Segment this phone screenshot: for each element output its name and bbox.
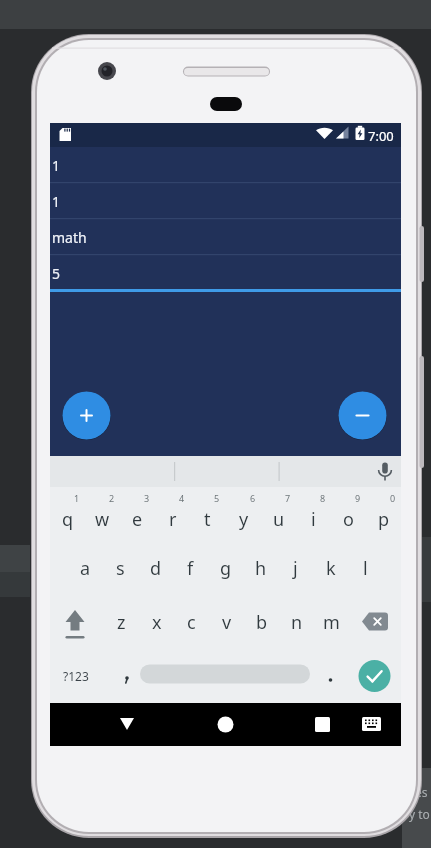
- button[interactable]: [349, 595, 401, 649]
- staticText: 7: [285, 492, 291, 504]
- staticText: 0: [390, 492, 396, 504]
- staticText: k: [326, 556, 336, 581]
- button[interactable]: h: [243, 541, 278, 595]
- staticText: w: [95, 507, 110, 532]
- button[interactable]: 1: [50, 489, 85, 541]
- button[interactable]: [107, 705, 147, 745]
- staticText: b: [256, 610, 268, 635]
- button[interactable]: [137, 649, 310, 703]
- button[interactable]: [338, 391, 387, 440]
- button[interactable]: 1: [50, 147, 401, 183]
- button[interactable]: 4: [155, 489, 190, 541]
- button[interactable]: 0: [366, 489, 401, 541]
- staticText: es: [415, 784, 428, 800]
- button[interactable]: math: [50, 219, 401, 255]
- staticText: u: [273, 507, 285, 532]
- button[interactable]: m: [314, 595, 349, 649]
- staticText: d: [150, 556, 162, 581]
- staticText: 1: [52, 156, 61, 175]
- button[interactable]: 7: [261, 489, 296, 541]
- staticText: 7:00: [368, 127, 394, 145]
- button[interactable]: d: [138, 541, 173, 595]
- staticText: t: [204, 507, 211, 532]
- staticText: j: [293, 556, 298, 581]
- button[interactable]: 6: [226, 489, 261, 541]
- staticText: x: [152, 610, 162, 635]
- button[interactable]: k: [313, 541, 348, 595]
- staticText: i: [311, 507, 316, 532]
- staticText: n: [291, 610, 303, 635]
- staticText: y: [239, 507, 249, 532]
- button[interactable]: v: [209, 595, 244, 649]
- staticText: 8: [320, 492, 326, 504]
- button[interactable]: 3: [120, 489, 155, 541]
- button[interactable]: z: [104, 595, 139, 649]
- button[interactable]: [310, 649, 345, 703]
- button[interactable]: x: [139, 595, 174, 649]
- button[interactable]: c: [174, 595, 209, 649]
- staticText: r: [169, 507, 177, 532]
- staticText: 9: [355, 492, 361, 504]
- staticText: c: [187, 610, 196, 635]
- staticText: p: [378, 507, 390, 532]
- button[interactable]: s: [103, 541, 138, 595]
- staticText: ?123: [63, 668, 89, 684]
- staticText: g: [220, 556, 232, 581]
- staticText: s: [116, 556, 125, 581]
- staticText: 6: [250, 492, 256, 504]
- staticText: math: [52, 228, 87, 247]
- button[interactable]: g: [208, 541, 243, 595]
- staticText: v: [222, 610, 232, 635]
- button[interactable]: [302, 705, 342, 745]
- staticText: h: [255, 556, 267, 581]
- button[interactable]: [352, 705, 392, 745]
- staticText: o: [343, 507, 354, 532]
- staticText: 1: [74, 492, 80, 504]
- staticText: e: [132, 507, 143, 532]
- button[interactable]: l: [348, 541, 383, 595]
- button[interactable]: ?123: [50, 649, 102, 703]
- staticText: 5: [214, 492, 220, 504]
- button[interactable]: b: [244, 595, 279, 649]
- button[interactable]: 1: [50, 183, 401, 219]
- button[interactable]: [205, 705, 245, 745]
- button[interactable]: a: [68, 541, 103, 595]
- staticText: 2: [109, 492, 115, 504]
- button[interactable]: [102, 649, 137, 703]
- button[interactable]: j: [278, 541, 313, 595]
- staticText: a: [80, 556, 91, 581]
- staticText: m: [323, 610, 340, 635]
- staticText: 5: [52, 264, 61, 283]
- staticText: f: [187, 556, 194, 581]
- staticText: y to: [409, 806, 430, 822]
- staticText: 4: [179, 492, 185, 504]
- button[interactable]: [345, 649, 401, 703]
- button[interactable]: 9: [331, 489, 366, 541]
- button[interactable]: 5: [190, 489, 225, 541]
- staticText: 1: [52, 192, 61, 211]
- button[interactable]: [50, 595, 102, 649]
- button[interactable]: n: [279, 595, 314, 649]
- button[interactable]: [62, 391, 111, 440]
- staticText: z: [117, 610, 126, 635]
- button[interactable]: f: [173, 541, 208, 595]
- staticText: 3: [144, 492, 150, 504]
- button[interactable]: 8: [296, 489, 331, 541]
- staticText: l: [363, 556, 368, 581]
- staticText: q: [62, 507, 74, 532]
- button[interactable]: 5: [50, 255, 401, 291]
- button[interactable]: 2: [85, 489, 120, 541]
